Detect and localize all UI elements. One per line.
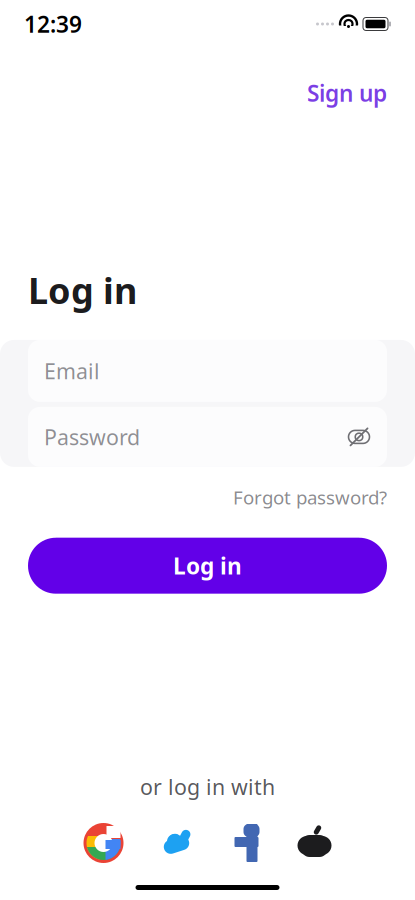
staticText: Sign up <box>307 78 387 108</box>
button[interactable]: Forgot password? <box>233 481 387 514</box>
staticText: Log in <box>173 551 242 581</box>
button[interactable]: Sign up <box>301 70 393 116</box>
button[interactable]: Log in <box>28 538 387 594</box>
staticText: Forgot password? <box>233 485 387 510</box>
button[interactable]: Email <box>28 340 387 402</box>
staticText: or log in with <box>140 773 275 801</box>
staticText: Password <box>44 423 140 451</box>
button[interactable]: Log in with Apple <box>297 823 331 863</box>
staticText: Log in <box>28 266 137 314</box>
staticText: Email <box>44 357 100 385</box>
button[interactable]: Password <box>28 407 387 467</box>
button[interactable]: Log in with Facebook <box>229 823 263 863</box>
button[interactable]: Log in with Google <box>83 823 123 863</box>
staticText: 12:39 <box>24 9 82 39</box>
button[interactable]: Log in with Twitter <box>157 825 195 861</box>
